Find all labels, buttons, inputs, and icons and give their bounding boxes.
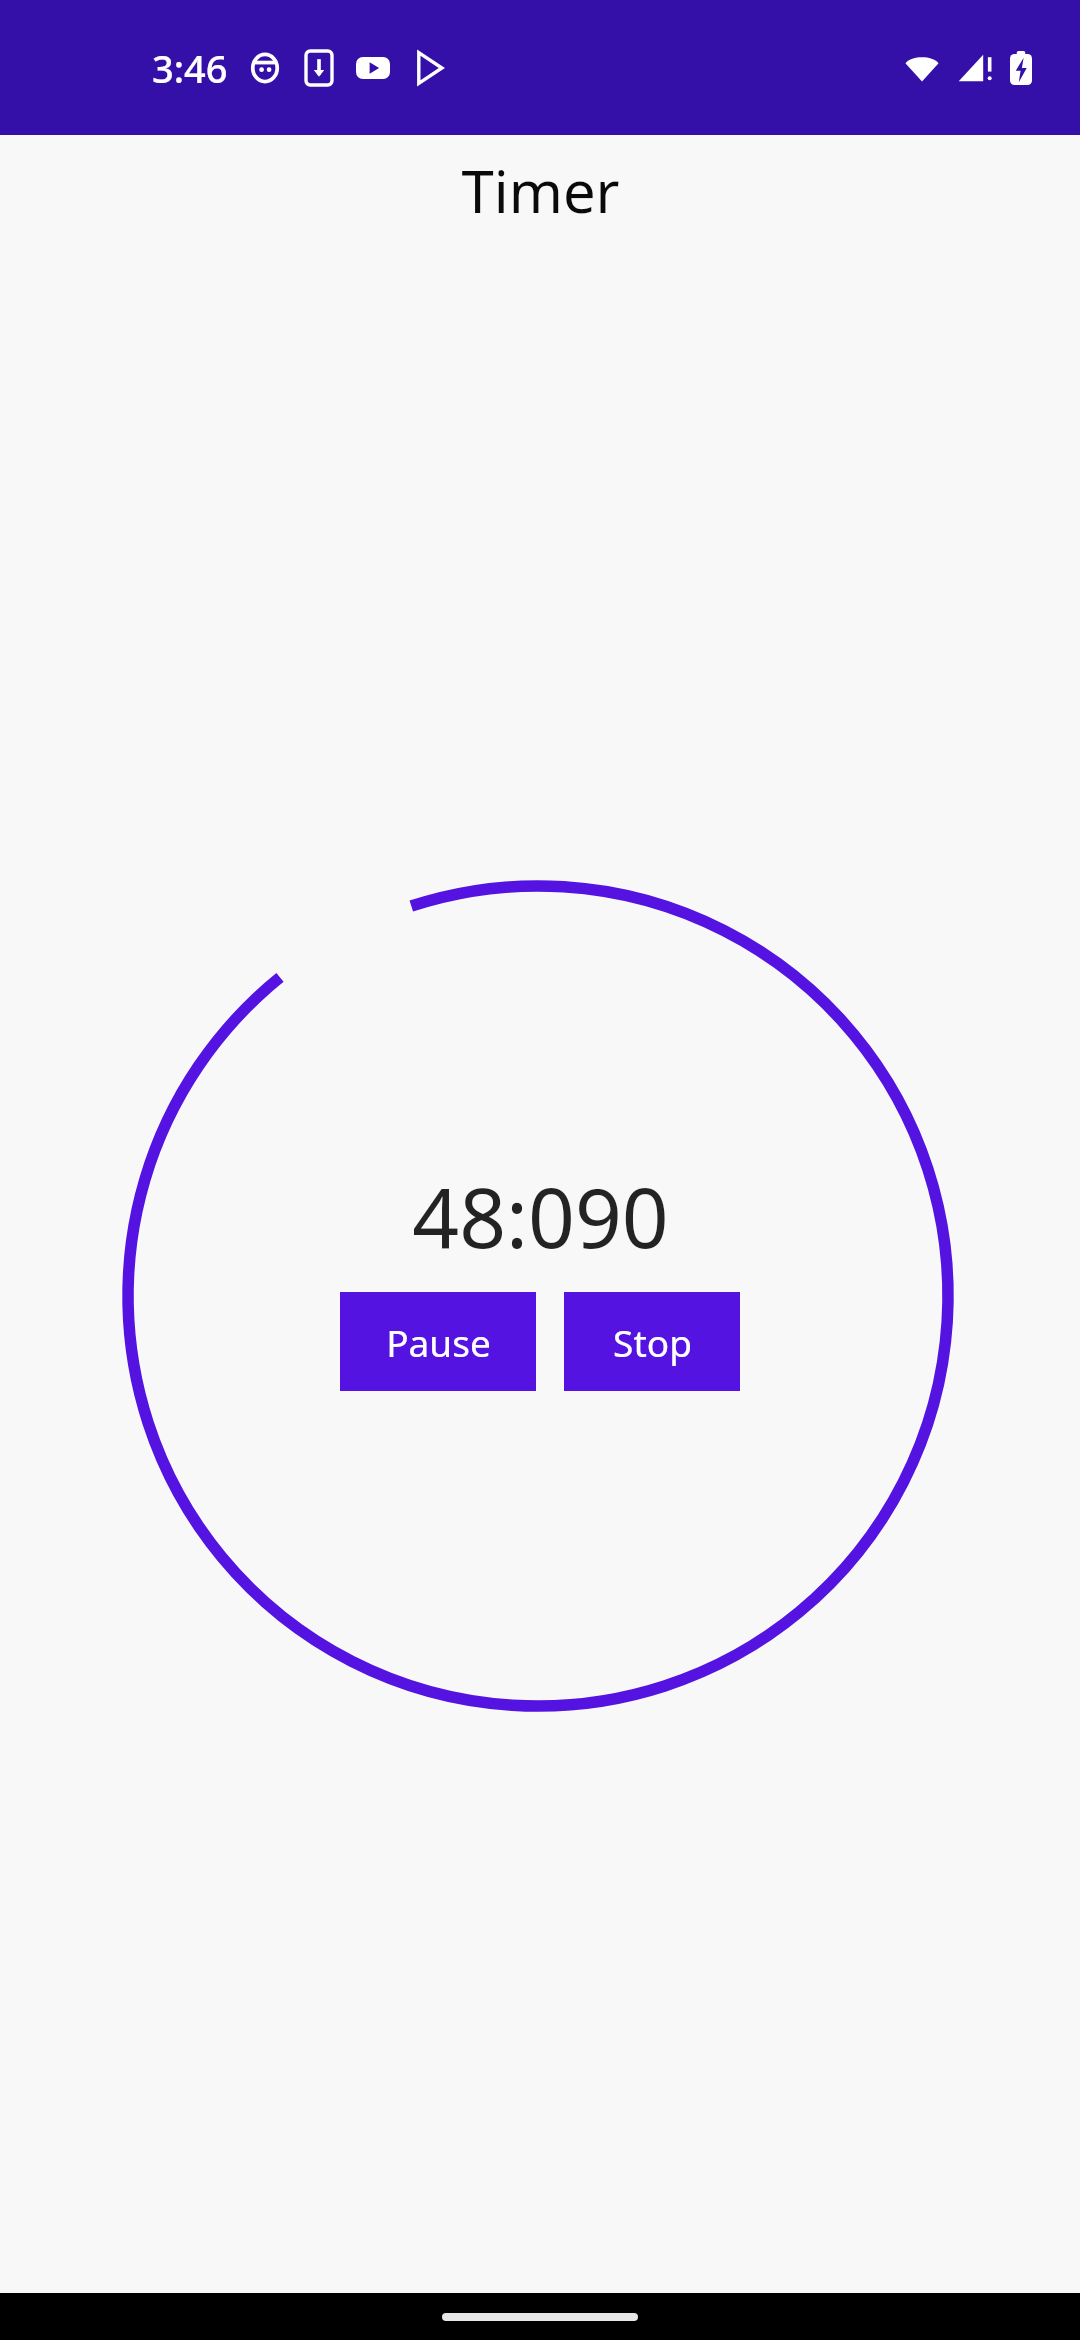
staticText: Stop (613, 1317, 692, 1367)
staticText: 48:090 (412, 1160, 669, 1272)
staticText: Pause (386, 1317, 491, 1367)
button[interactable]: Pause (340, 1292, 536, 1391)
staticText: Timer (461, 151, 620, 230)
staticText: 3:46 (152, 42, 228, 94)
button[interactable]: Stop (564, 1292, 740, 1391)
